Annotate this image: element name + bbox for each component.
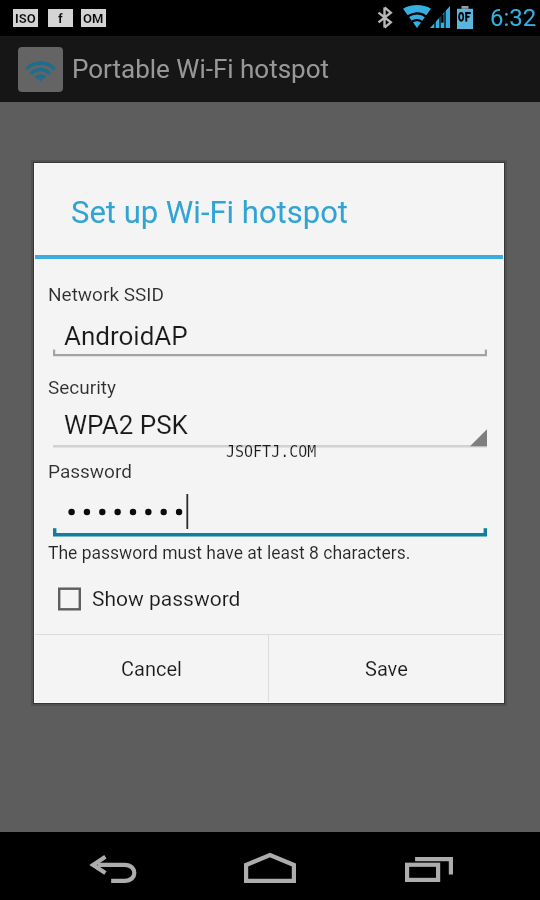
staticText: Security bbox=[48, 376, 117, 398]
staticText: Cancel bbox=[121, 657, 182, 680]
staticText: 6:32 bbox=[490, 4, 537, 32]
button[interactable] bbox=[53, 494, 487, 540]
staticText: ISO bbox=[15, 11, 36, 26]
staticText: Show password bbox=[92, 587, 241, 612]
button[interactable]: Recent apps bbox=[379, 832, 479, 900]
staticText: Password bbox=[48, 460, 132, 482]
button[interactable]: Back bbox=[65, 832, 165, 900]
staticText: f bbox=[58, 11, 63, 26]
staticText: WPA2 PSK bbox=[64, 410, 188, 440]
button[interactable]: Cancel bbox=[35, 635, 268, 702]
staticText: Save bbox=[365, 657, 408, 680]
staticText: The password must have at least 8 charac… bbox=[48, 543, 411, 564]
staticText: OM bbox=[83, 11, 104, 26]
button[interactable] bbox=[53, 309, 487, 359]
button[interactable]: Show password bbox=[53, 581, 241, 617]
staticText: Portable Wi-Fi hotspot bbox=[72, 54, 330, 84]
staticText: JSOFTJ.COM bbox=[226, 443, 317, 460]
staticText: Network SSID bbox=[48, 283, 164, 305]
button[interactable]: Save bbox=[269, 635, 503, 702]
staticText: AndroidAP bbox=[64, 321, 188, 351]
button[interactable]: Home bbox=[220, 832, 320, 900]
button[interactable] bbox=[53, 398, 487, 448]
staticText: Set up Wi-Fi hotspot bbox=[71, 194, 348, 230]
